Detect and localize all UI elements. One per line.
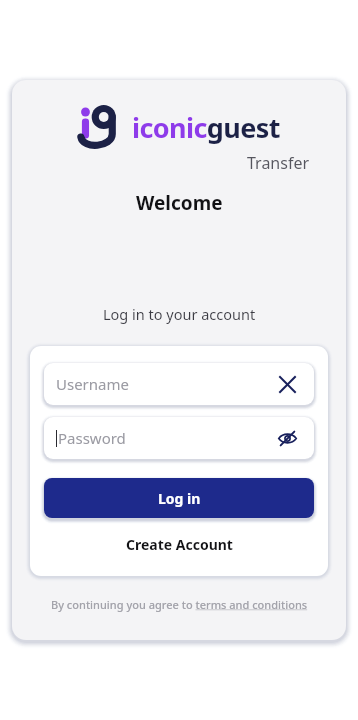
button[interactable]: Username bbox=[44, 363, 314, 405]
button[interactable]: Password bbox=[44, 417, 314, 459]
button[interactable]: Log in bbox=[44, 478, 314, 518]
staticText: Create Account bbox=[126, 535, 233, 554]
staticText: Transfer bbox=[247, 152, 310, 174]
staticText: Password bbox=[58, 428, 272, 448]
staticText: iconicguest bbox=[132, 109, 280, 146]
button[interactable]: Create Account bbox=[112, 530, 247, 559]
staticText: By continuing you agree to terms and con… bbox=[51, 597, 308, 612]
staticText: Log in to your account bbox=[103, 304, 256, 324]
staticText: Welcome bbox=[136, 190, 223, 216]
staticText: Username bbox=[56, 374, 272, 394]
button[interactable]: Show password bbox=[272, 423, 302, 453]
staticText: Log in bbox=[158, 489, 201, 508]
button[interactable]: By continuing you agree to terms and con… bbox=[45, 594, 314, 615]
button[interactable]: Clear username bbox=[272, 369, 302, 399]
